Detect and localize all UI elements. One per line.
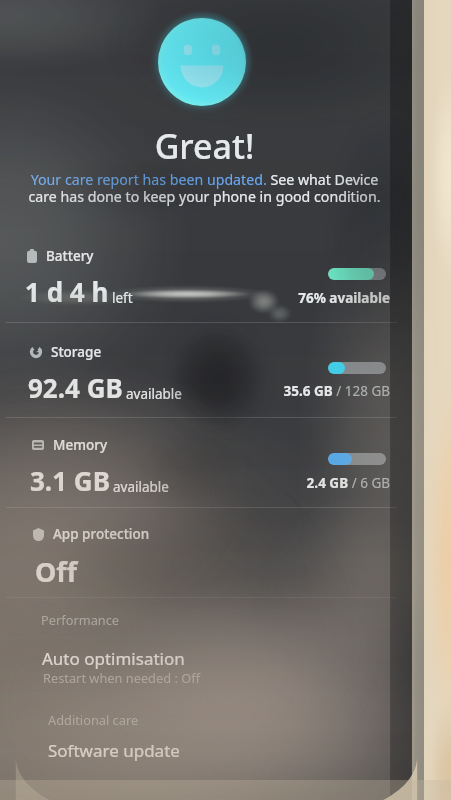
button[interactable]: App protection — [0, 520, 409, 596]
staticText: 92.4 GB — [28, 370, 123, 405]
button[interactable]: Software update — [0, 736, 409, 774]
staticText: 76% available — [0, 289, 390, 307]
button[interactable]: Device care status — [149, 9, 255, 115]
staticText: Software update — [48, 739, 180, 762]
staticText: available — [126, 385, 182, 403]
staticText: 1 d 4 h — [25, 274, 109, 309]
staticText: 35.6 GB / 128 GB — [0, 382, 390, 400]
staticText: Your care report has been updated. See w… — [0, 170, 409, 207]
staticText: App protection — [53, 525, 150, 543]
button[interactable]: Storage — [0, 341, 409, 417]
staticText: 3.1 GB — [30, 463, 110, 498]
staticText: Storage — [51, 343, 102, 361]
button[interactable]: Battery — [0, 245, 409, 321]
staticText: Restart when needed : Off — [43, 669, 200, 686]
staticText: Performance — [41, 611, 120, 628]
button[interactable]: Auto optimisation — [0, 644, 409, 690]
staticText: Great! — [0, 123, 409, 169]
staticText: Off — [35, 553, 78, 590]
button[interactable]: Memory — [0, 434, 409, 510]
staticText: 2.4 GB / 6 GB — [0, 474, 390, 492]
staticText: Additional care — [48, 711, 139, 728]
staticText: Auto optimisation — [42, 647, 185, 670]
staticText: Battery — [46, 247, 94, 265]
staticText: Memory — [53, 436, 108, 454]
staticText: available — [113, 478, 169, 496]
staticText: left — [112, 289, 133, 307]
